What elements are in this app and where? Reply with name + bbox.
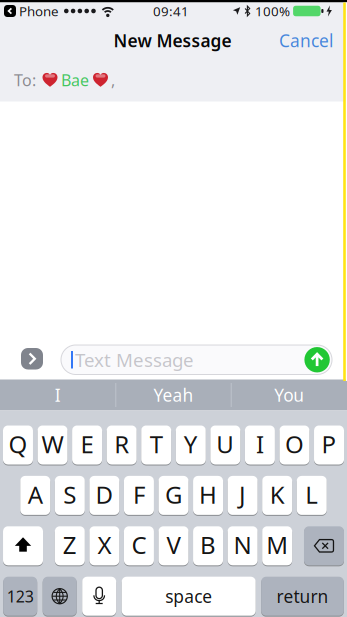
button[interactable]: D [89, 476, 119, 515]
button[interactable]: I [245, 425, 275, 464]
staticText: B [200, 529, 216, 561]
staticText: P [321, 428, 336, 460]
button[interactable]: H [193, 476, 223, 515]
button[interactable]: V [158, 526, 188, 565]
button[interactable]: K [262, 476, 292, 515]
button[interactable]: Y [176, 425, 206, 464]
staticText: To: [14, 69, 36, 91]
staticText: L [305, 478, 318, 510]
button[interactable]: Dictate [82, 577, 116, 616]
staticText: 100% [255, 2, 290, 20]
staticText: 123 [7, 586, 34, 607]
button[interactable]: Cancel [279, 29, 333, 52]
staticText: N [234, 529, 252, 561]
button[interactable]: Delete [304, 526, 344, 565]
staticText: , [111, 69, 115, 91]
button[interactable]: X [89, 526, 119, 565]
button[interactable]: Z [55, 526, 85, 565]
button[interactable]: 123 [3, 577, 37, 616]
button[interactable]: Yeah [116, 379, 231, 410]
staticText: T [150, 428, 163, 460]
button[interactable]: Q [3, 425, 33, 464]
button[interactable]: P [314, 425, 344, 464]
staticText: New Message [113, 29, 231, 52]
staticText: J [239, 478, 246, 510]
staticText: Phone [19, 2, 59, 20]
staticText: X [97, 529, 111, 561]
staticText: Y [184, 428, 198, 460]
staticText: K [270, 478, 285, 510]
button[interactable]: Expand app drawer [21, 348, 43, 369]
staticText: G [165, 478, 182, 510]
staticText: H [199, 478, 217, 510]
button[interactable]: S [55, 476, 85, 515]
button[interactable]: space [122, 577, 256, 616]
button[interactable]: B [193, 526, 223, 565]
button[interactable]: R [107, 425, 137, 464]
button[interactable]: return [261, 577, 344, 616]
button[interactable]: U [210, 425, 240, 464]
button[interactable]: F [124, 476, 154, 515]
button[interactable]: N [228, 526, 258, 565]
button[interactable]: M [262, 526, 292, 565]
staticText: M [266, 529, 288, 561]
button[interactable]: A [20, 476, 50, 515]
staticText: I [256, 428, 264, 460]
staticText: You [274, 383, 304, 406]
staticText: Z [63, 529, 77, 561]
staticText: O [285, 428, 304, 460]
button[interactable]: Next keyboard [43, 577, 77, 616]
button[interactable]: L [297, 476, 327, 515]
staticText: W [41, 428, 63, 460]
button[interactable]: O [279, 425, 309, 464]
staticText: D [95, 478, 113, 510]
button[interactable]: Send [304, 347, 330, 372]
staticText: E [81, 428, 94, 460]
staticText: 09:41 [153, 2, 189, 20]
staticText: I [55, 383, 61, 406]
button[interactable]: E [72, 425, 102, 464]
button[interactable]: I [0, 379, 115, 410]
staticText: Text Message [75, 347, 194, 372]
button[interactable]: W [37, 425, 67, 464]
staticText: A [28, 478, 43, 510]
staticText: V [166, 529, 180, 561]
staticText: space [165, 585, 212, 608]
staticText: F [133, 478, 145, 510]
button[interactable]: You [232, 379, 347, 410]
staticText: Q [8, 428, 27, 460]
button[interactable]: G [158, 476, 188, 515]
button[interactable]: J [228, 476, 258, 515]
staticText: Yeah [153, 383, 193, 406]
staticText: return [276, 585, 328, 608]
staticText: S [63, 478, 76, 510]
staticText: R [114, 428, 129, 460]
staticText: Bae [61, 69, 89, 91]
button[interactable]: C [124, 526, 154, 565]
button[interactable]: T [141, 425, 171, 464]
staticText: U [216, 428, 234, 460]
staticText: C [131, 529, 146, 561]
staticText: Cancel [279, 29, 333, 52]
button[interactable]: Shift [3, 526, 43, 565]
